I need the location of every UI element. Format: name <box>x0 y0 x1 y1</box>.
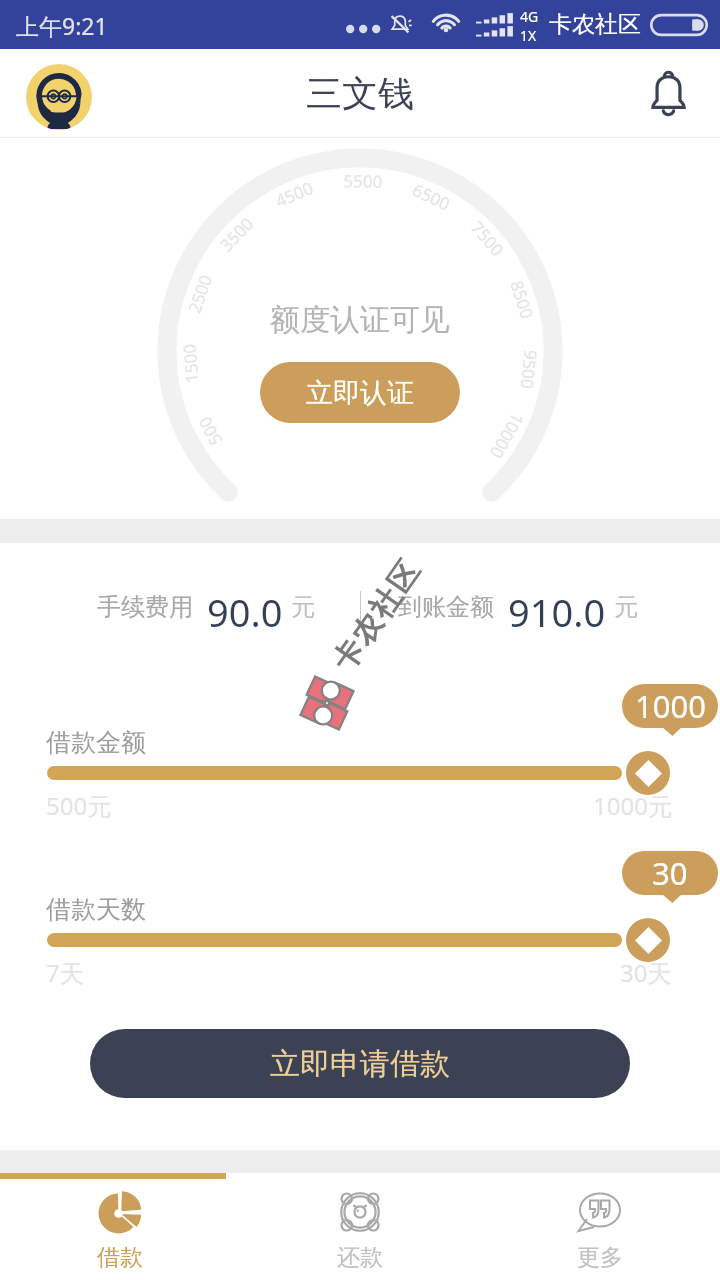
button[interactable]: 还款 <box>240 1179 480 1280</box>
staticText: 500元 <box>46 789 112 822</box>
staticText: 元 <box>614 592 638 622</box>
staticText: 借款 <box>97 1243 143 1272</box>
staticText: 卡农社区 <box>549 10 641 39</box>
staticText: 借款天数 <box>46 894 146 925</box>
staticText: 7天 <box>46 956 84 989</box>
staticText: 910.0 <box>508 586 606 628</box>
button[interactable]: 立即申请借款 <box>90 1029 630 1098</box>
staticText: 上午9:21 <box>16 10 108 41</box>
staticText: 还款 <box>337 1243 383 1272</box>
button[interactable]: 借款 <box>0 1179 240 1280</box>
staticText: 1000 <box>635 685 706 727</box>
staticText: 立即认证 <box>306 376 414 410</box>
staticText: 30天 <box>620 956 672 989</box>
staticText: 到账金额 <box>398 592 494 622</box>
button[interactable]: Slider thumb 30 <box>626 918 670 962</box>
staticText: 1X <box>520 26 537 45</box>
staticText: 30 <box>652 852 688 894</box>
staticText: 4G <box>520 7 539 26</box>
staticText: 90.0 <box>207 586 283 628</box>
staticText: 元 <box>291 592 315 622</box>
staticText: 更多 <box>577 1243 623 1272</box>
staticText: 三文钱 <box>306 71 414 116</box>
button[interactable]: App logo <box>26 64 92 130</box>
staticText: 1000元 <box>593 789 672 822</box>
staticText: 立即申请借款 <box>270 1045 450 1083</box>
staticText: 借款金额 <box>46 727 146 758</box>
button[interactable]: Slider thumb 1000 <box>626 751 670 795</box>
button[interactable]: 立即认证 <box>260 362 460 423</box>
button[interactable]: 更多 <box>480 1179 720 1280</box>
button[interactable]: Notifications <box>641 64 696 119</box>
staticText: 手续费用 <box>97 592 193 622</box>
staticText: 额度认证可见 <box>0 301 720 339</box>
